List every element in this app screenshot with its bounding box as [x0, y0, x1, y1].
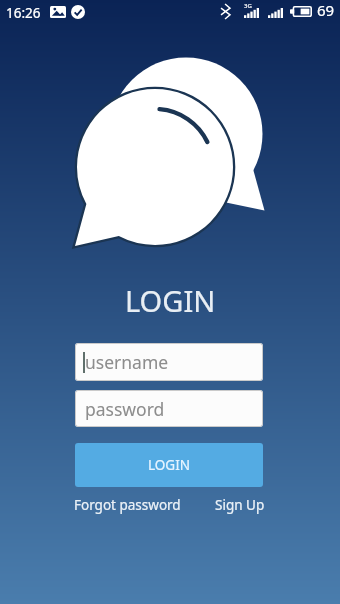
staticText: 16:26 [6, 4, 41, 22]
other: Screenshot [50, 6, 66, 18]
button[interactable]: password [75, 390, 263, 427]
button[interactable]: Sign Up [215, 496, 265, 514]
button[interactable]: Forgot password [74, 496, 181, 514]
other: Verified [71, 5, 85, 19]
staticText: Sign Up [215, 496, 265, 514]
staticText: LOGIN [125, 281, 216, 320]
button[interactable]: LOGIN [75, 443, 263, 487]
button[interactable]: username [75, 343, 263, 381]
staticText: 69 [317, 0, 335, 20]
staticText: username [85, 350, 169, 374]
staticText: password [85, 397, 165, 421]
staticText: 3G [244, 2, 252, 10]
staticText: Forgot password [74, 496, 181, 514]
staticText: LOGIN [148, 456, 191, 474]
